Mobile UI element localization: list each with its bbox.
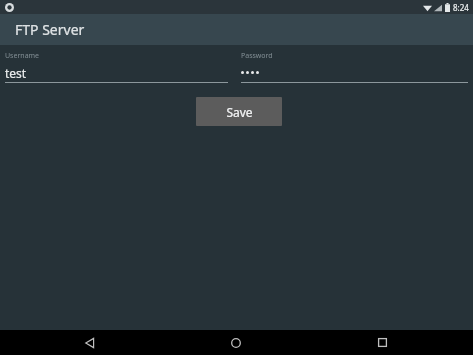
button[interactable]: Recent apps xyxy=(364,330,400,355)
button[interactable]: Save xyxy=(196,97,282,126)
button[interactable]: Username xyxy=(5,51,228,83)
button[interactable]: Home xyxy=(218,330,254,355)
staticText: Username xyxy=(5,51,40,61)
staticText: Password xyxy=(241,51,273,61)
staticText: FTP Server xyxy=(15,20,85,39)
staticText: 8:24 xyxy=(453,2,469,13)
staticText: Save xyxy=(226,104,253,120)
staticText: test xyxy=(5,65,27,80)
button[interactable]: Back xyxy=(72,330,108,355)
button[interactable]: Password xyxy=(241,51,468,83)
